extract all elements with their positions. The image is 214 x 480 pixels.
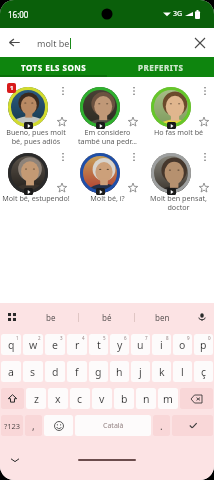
staticText: Molt bé, estupendo! [2,193,70,203]
button[interactable]: , [25,415,42,436]
button[interactable]: Shift [1,388,24,409]
staticText: 4 [82,335,85,341]
staticText: 3 [60,335,63,341]
button[interactable]: o [173,334,192,355]
button[interactable]: TOTS ELS SONS [0,57,107,77]
staticText: x [55,392,61,406]
button[interactable]: i [152,334,171,355]
button[interactable]: Enter [172,415,213,436]
button[interactable]: t [89,334,108,355]
button[interactable]: Clear [185,28,214,57]
button[interactable]: d [45,361,65,382]
staticText: z [34,392,39,406]
staticText: p [200,338,207,352]
staticText: Bueno, pues molt bé, pues adiós [2,127,70,146]
staticText: g [95,365,102,379]
button[interactable]: More options [0,143,72,209]
staticText: v [99,392,105,406]
button[interactable]: Favourite [198,116,210,128]
button[interactable]: More options [0,77,72,143]
button[interactable]: More options [200,152,210,162]
button[interactable]: Favourite [198,182,210,194]
staticText: i [160,338,163,352]
button[interactable]: bé [79,303,134,331]
staticText: Català [103,421,124,431]
staticText: q [8,338,15,352]
button[interactable]: f [67,361,87,382]
button[interactable]: More options [58,152,68,162]
staticText: be [46,312,56,323]
button[interactable]: u [131,334,150,355]
staticText: 6 [124,335,127,341]
staticText: b [121,392,128,406]
button[interactable]: a [1,361,21,382]
staticText: Ho fas molt bé [145,127,212,137]
button[interactable]: ç [194,361,213,382]
button[interactable]: c [70,388,90,409]
button[interactable]: . [153,415,170,436]
button[interactable]: h [110,361,129,382]
staticText: 3G [173,9,183,19]
button[interactable]: Favourite [56,182,68,194]
button[interactable]: b [114,388,134,409]
staticText: e [52,338,58,352]
button[interactable]: x [48,388,68,409]
staticText: m [163,392,173,406]
button[interactable]: PREFERITS [107,57,214,77]
staticText: bé [102,312,112,323]
staticText: y [117,338,123,352]
button[interactable]: g [89,361,108,382]
staticText: 5 [103,335,106,341]
staticText: 7 [145,335,148,341]
button[interactable]: be [24,303,78,331]
staticText: o [179,338,186,352]
button[interactable]: y [110,334,129,355]
button[interactable]: Back [0,28,29,57]
staticText: ç [201,365,207,379]
button[interactable]: More options [129,152,139,162]
staticText: t [97,338,101,352]
button[interactable]: j [131,361,150,382]
button[interactable]: More options [72,143,143,209]
button[interactable]: w [23,334,43,355]
button[interactable]: q [1,334,21,355]
button[interactable]: More options [143,77,214,143]
staticText: 8 [166,335,169,341]
button[interactable]: e [45,334,65,355]
button[interactable]: p [194,334,213,355]
staticText: d [52,365,59,379]
button[interactable]: Backspace [180,388,213,409]
button[interactable]: l [173,361,192,382]
button[interactable]: Voice input [190,303,214,331]
button[interactable]: Favourite [56,116,68,128]
button[interactable]: v [92,388,112,409]
staticText: f [75,365,79,379]
staticText: ?123 [4,421,21,431]
button[interactable]: More options [72,77,143,143]
button[interactable]: Català [75,415,151,436]
button[interactable]: n [136,388,156,409]
button[interactable]: More options [58,86,68,96]
button[interactable]: Toolbar [0,303,24,331]
button[interactable]: Favourite [127,116,139,128]
button[interactable]: Favourite [127,182,139,194]
staticText: n [143,392,150,406]
staticText: 1 [10,84,14,92]
staticText: 1 [16,335,19,341]
staticText: h [116,365,123,379]
button[interactable]: More options [143,143,214,209]
staticText: Em considero també una pedr... [74,127,141,146]
button[interactable]: r [67,334,87,355]
button[interactable]: s [23,361,43,382]
button[interactable]: k [152,361,171,382]
button[interactable]: More options [200,86,210,96]
button[interactable]: More options [129,86,139,96]
staticText: Molt ben pensat, doctor [145,193,212,212]
button[interactable]: ?123 [1,415,23,436]
button[interactable]: ben [135,303,190,331]
button[interactable]: m [158,388,178,409]
staticText: 16:00 [8,9,29,20]
button[interactable]: z [26,388,46,409]
button[interactable]: Emoji [44,415,73,436]
staticText: r [75,338,80,352]
